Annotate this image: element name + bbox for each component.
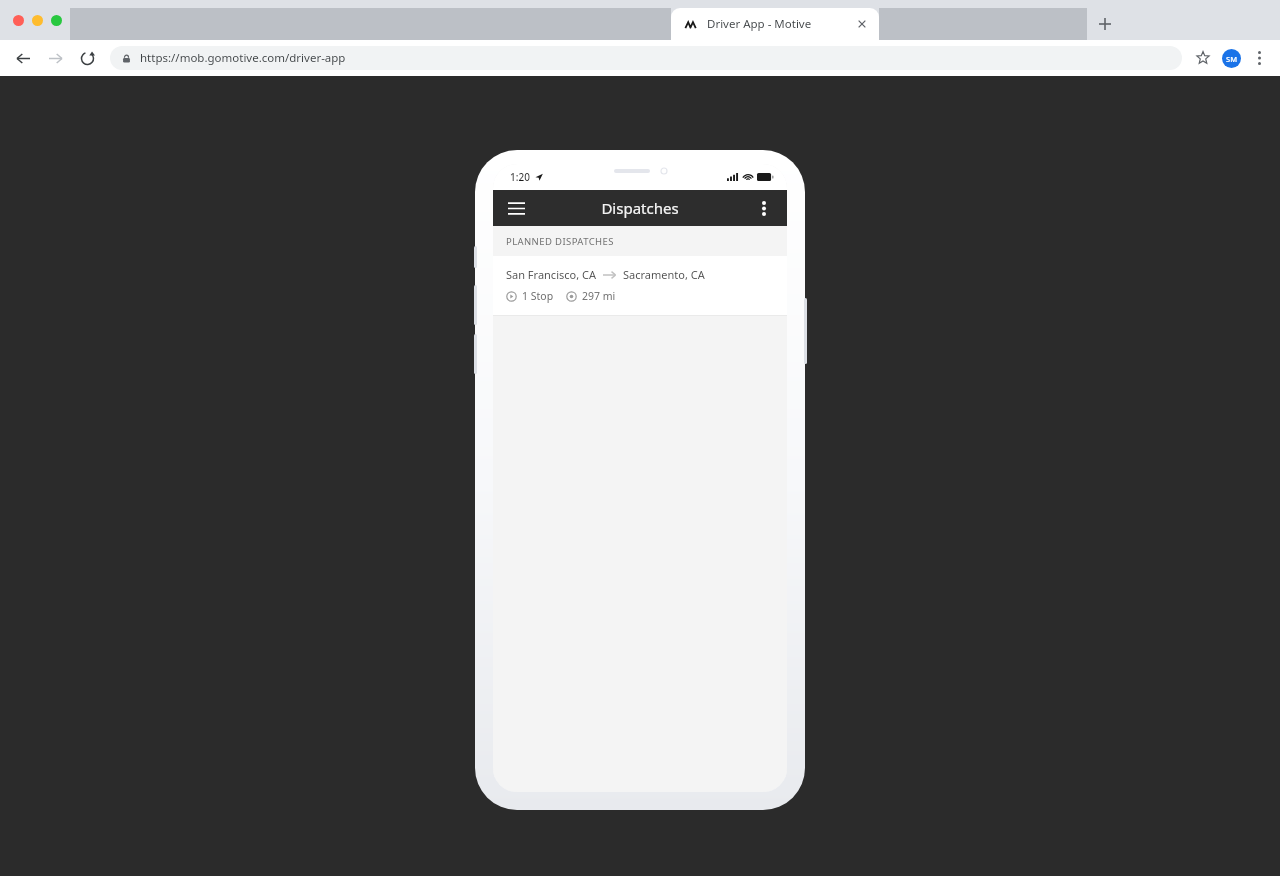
staticText: SM — [1226, 54, 1238, 64]
staticText: 297 mi — [582, 289, 616, 303]
staticText: 1:20 — [510, 170, 530, 184]
button[interactable]: Reload — [73, 44, 101, 72]
staticText: Sacramento, CA — [623, 267, 705, 282]
staticText: Driver App - Motive — [707, 16, 812, 32]
button[interactable]: New tab — [1087, 8, 1123, 40]
staticText: San Francisco, CA — [506, 267, 596, 282]
button[interactable]: https://mob.gomotive.com/driver-app — [110, 46, 1182, 70]
staticText: Dispatches — [601, 198, 679, 218]
button[interactable]: Profile — [1222, 49, 1241, 68]
button[interactable]: Customize and control Chrome — [1247, 46, 1271, 70]
button[interactable]: Bookmark this tab — [1190, 45, 1216, 71]
button[interactable]: Close tab — [853, 15, 871, 33]
button[interactable]: More options — [749, 193, 779, 223]
button[interactable]: Forward — [41, 44, 69, 72]
button[interactable]: San Francisco, CA — [493, 256, 787, 315]
button[interactable]: Driver App - Motive — [671, 8, 879, 40]
staticText: PLANNED DISPATCHES — [506, 235, 614, 248]
button[interactable]: Open navigation menu — [501, 193, 531, 223]
button[interactable]: Back — [9, 44, 37, 72]
staticText: 1 Stop — [522, 289, 554, 303]
staticText: https://mob.gomotive.com/driver-app — [140, 50, 346, 66]
